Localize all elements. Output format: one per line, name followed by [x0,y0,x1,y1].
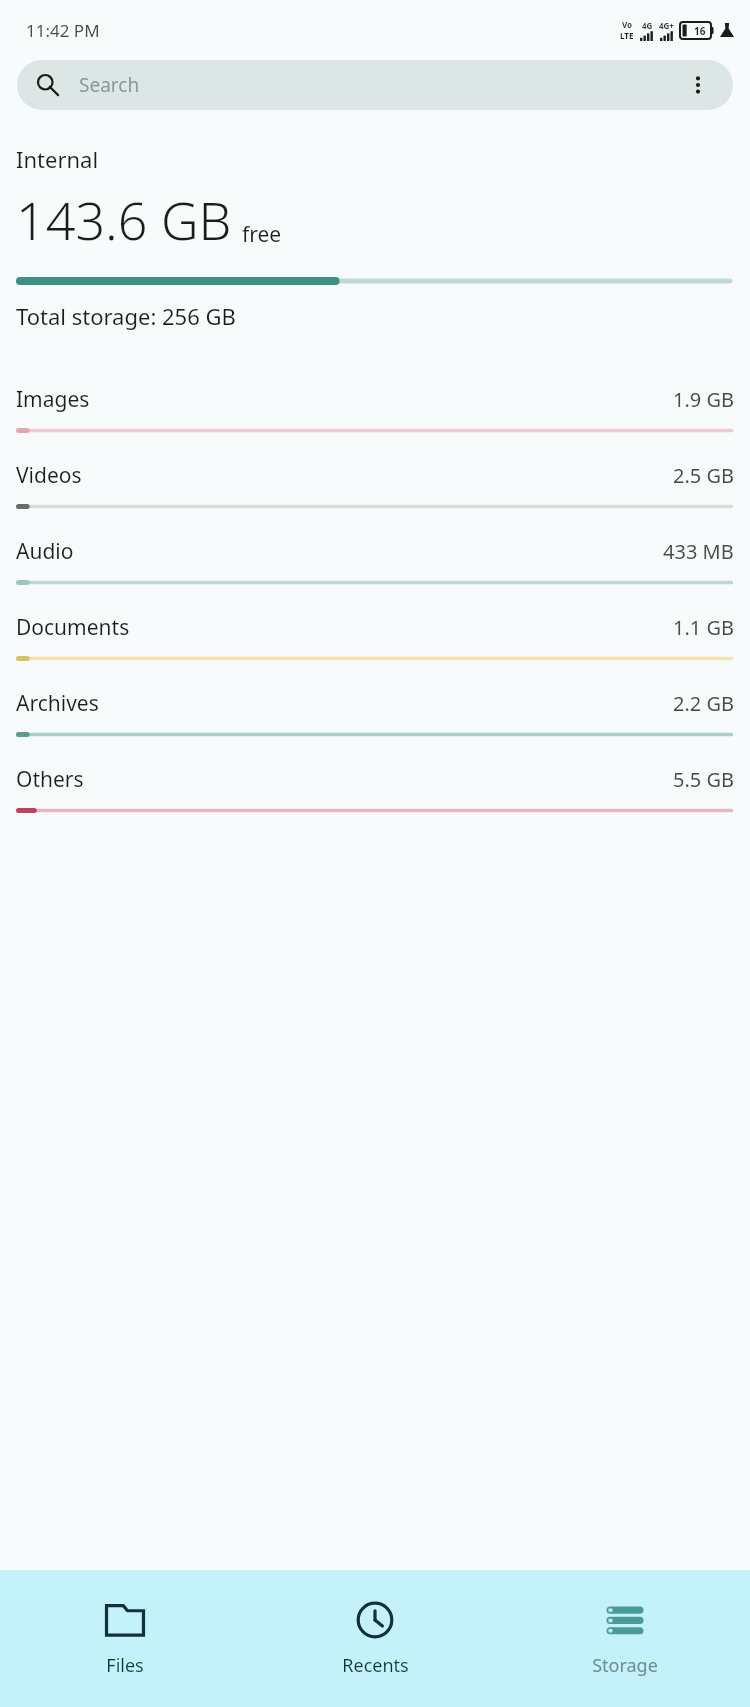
staticText: Archives [16,689,99,718]
staticText: LTE [620,30,634,41]
button[interactable]: Recents [250,1591,500,1686]
button[interactable]: Storage [500,1591,750,1686]
button[interactable]: Videos [0,447,750,523]
button[interactable]: Archives [0,675,750,751]
staticText: Total storage: 256 GB [16,301,236,331]
staticText: Storage [592,1653,658,1678]
staticText: 4G [642,20,653,31]
staticText: Search [79,72,140,98]
staticText: Vo [622,19,633,30]
staticText: Images [16,385,90,414]
button[interactable]: Audio [0,523,750,599]
staticText: 1.1 GB [673,614,734,641]
staticText: 4G+ [659,20,674,31]
staticText: 1.9 GB [673,386,734,413]
staticText: 2.5 GB [673,462,734,489]
staticText: 11:42 PM [26,19,100,42]
staticText: Videos [16,461,82,490]
staticText: 5.5 GB [673,766,734,793]
staticText: 433 MB [663,538,734,565]
button[interactable]: More options [683,70,713,100]
staticText: Recents [342,1653,409,1678]
button[interactable]: Others [0,751,750,827]
staticText: free [242,220,282,249]
button[interactable]: Documents [0,599,750,675]
staticText: Others [16,765,84,794]
button[interactable]: Search [17,60,733,110]
staticText: 143.6 GB [16,184,232,255]
button[interactable]: Images [0,371,750,447]
staticText: Documents [16,613,130,642]
staticText: Internal [16,144,99,174]
staticText: Files [106,1653,144,1678]
button[interactable]: Files [0,1591,250,1686]
staticText: Audio [16,537,74,566]
staticText: 2.2 GB [673,690,734,717]
staticText: 16 [694,24,706,38]
